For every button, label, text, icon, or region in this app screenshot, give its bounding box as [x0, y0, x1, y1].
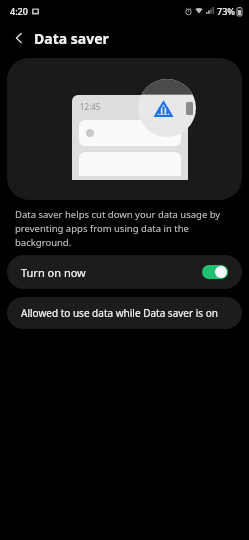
button[interactable]: Allowed to use data while Data saver is … — [7, 297, 242, 329]
staticText: 4:20 — [10, 5, 28, 17]
staticText: 73% — [217, 5, 235, 17]
staticText: Data saver — [34, 29, 109, 48]
staticText: 12:45 — [80, 101, 101, 112]
staticText: Allowed to use data while Data saver is … — [21, 306, 218, 320]
staticText: Turn on now — [21, 265, 86, 280]
button[interactable]: Turn on now — [7, 255, 242, 289]
button[interactable]: Back — [4, 23, 34, 53]
staticText: Data saver helps cut down your data usag… — [15, 208, 234, 249]
